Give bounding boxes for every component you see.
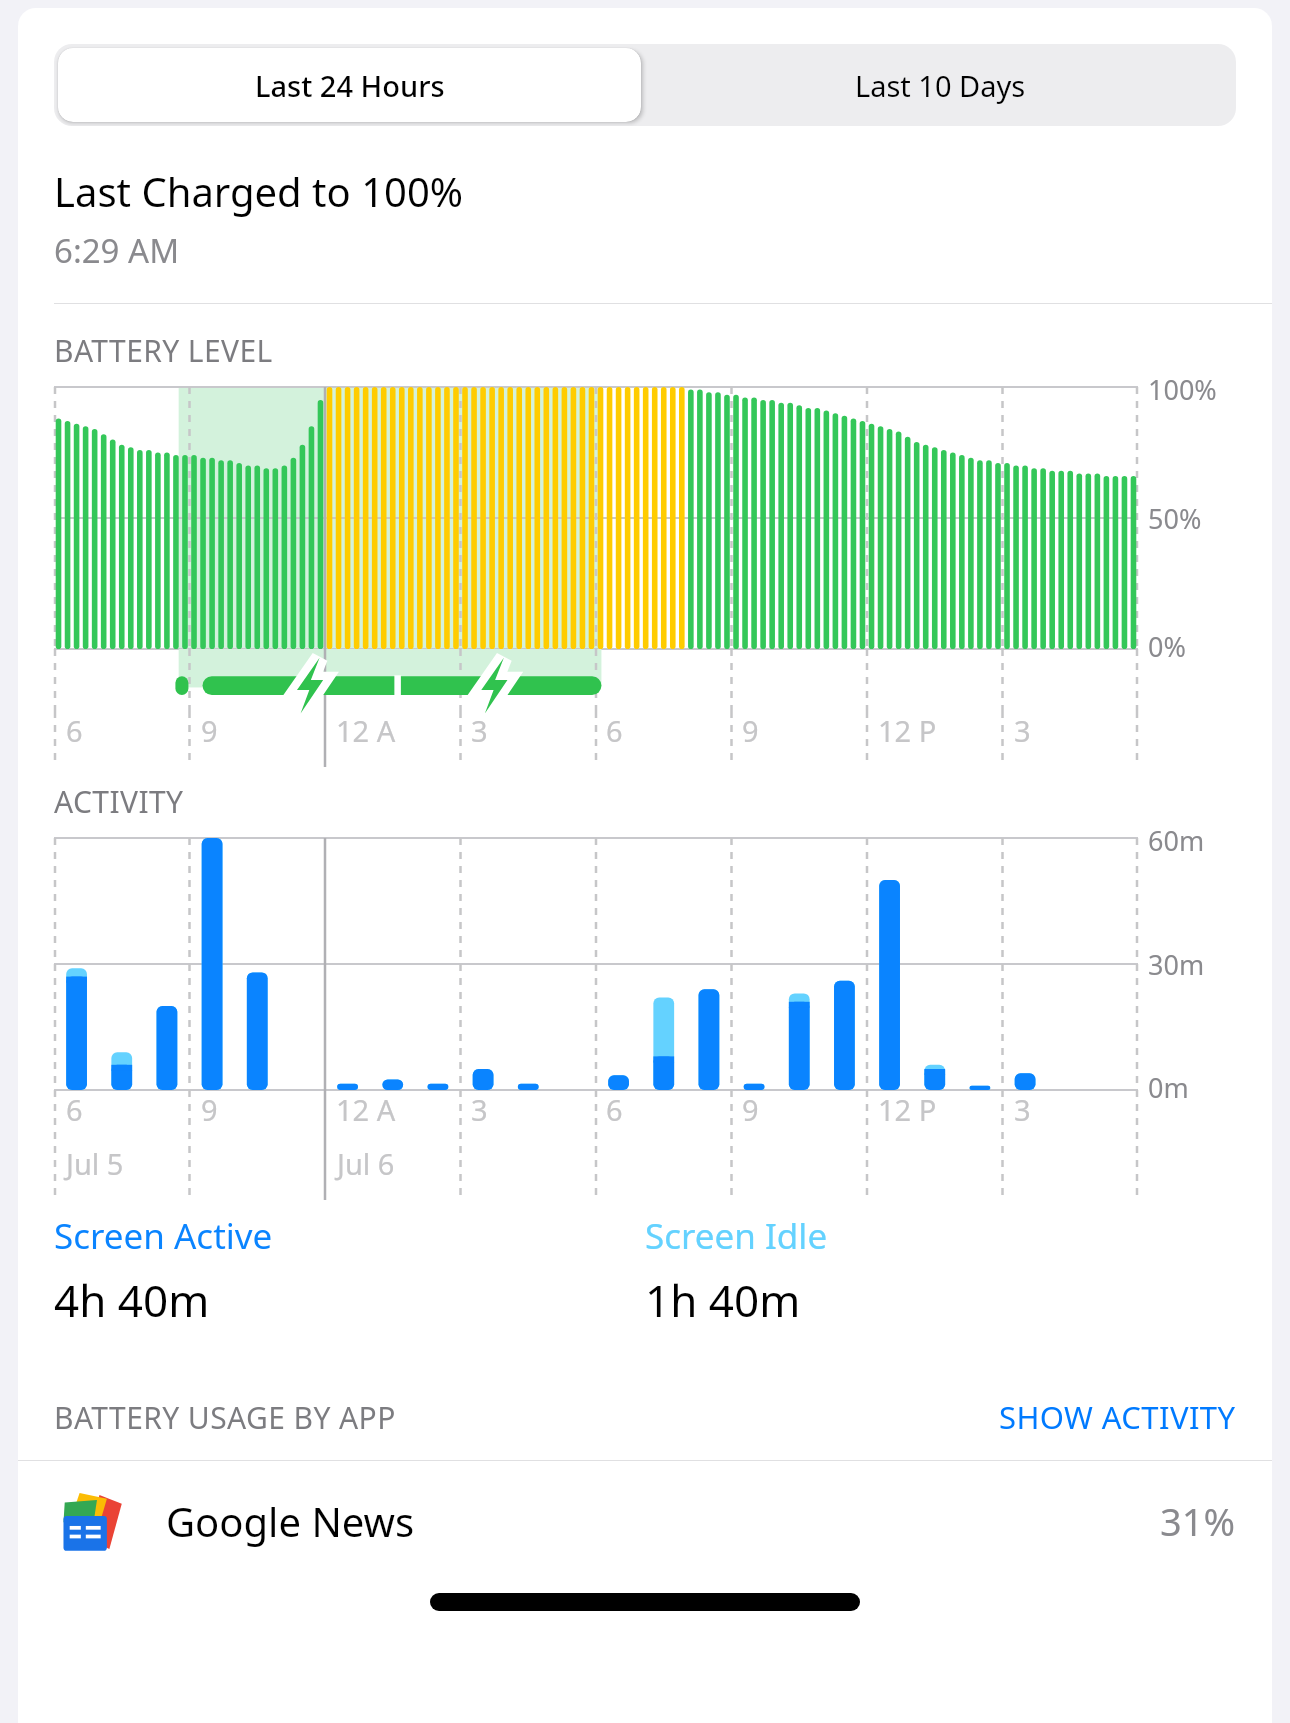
staticText: 3 [471,1090,488,1129]
staticText: 9 [742,1090,759,1129]
button[interactable]: Last 10 Days [645,44,1236,126]
staticText: 12 P [878,711,937,750]
staticText: 3 [471,711,488,750]
staticText: 6 [66,1090,83,1129]
staticText: Screen Idle [645,1212,828,1260]
staticText: 3 [1014,1090,1031,1129]
staticText: Last Charged to 100% [54,164,464,218]
staticText: Jul 5 [66,1144,124,1183]
staticText: SHOW ACTIVITY [999,1396,1236,1438]
staticText: 1h 40m [645,1270,801,1330]
staticText: BATTERY LEVEL [54,330,273,371]
staticText: 6 [66,711,83,750]
staticText: 12 A [336,1090,396,1129]
staticText: 6:29 AM [54,228,180,273]
staticText: 12 A [336,711,396,750]
button[interactable]: Screen Active [54,1212,645,1330]
staticText: 0m [1148,1069,1189,1106]
button[interactable]: Last 24 Hours [58,48,641,122]
staticText: ACTIVITY [54,781,184,822]
staticText: 9 [742,711,759,750]
staticText: 50% [1148,500,1202,537]
button[interactable]: SHOW ACTIVITY [999,1396,1236,1438]
staticText: 0% [1148,628,1186,665]
other: Home indicator [430,1593,860,1611]
staticText: Last 10 Days [855,66,1026,105]
staticText: 60m [1148,822,1205,859]
staticText: 9 [201,1090,218,1129]
staticText: 9 [201,711,218,750]
staticText: 3 [1014,711,1031,750]
staticText: Jul 6 [337,1144,395,1183]
staticText: 30m [1148,946,1205,983]
staticText: 4h 40m [54,1270,210,1330]
staticText: 6 [606,711,623,750]
staticText: Last 24 Hours [255,66,445,105]
button[interactable]: Google News [18,1461,1272,1581]
staticText: 100% [1148,371,1217,408]
staticText: 12 P [878,1090,937,1129]
button[interactable]: Screen Idle [645,1212,1236,1330]
staticText: Screen Active [54,1212,273,1260]
staticText: 31% [1160,1495,1236,1547]
staticText: Google News [166,1494,415,1548]
staticText: BATTERY USAGE BY APP [54,1397,396,1438]
staticText: 6 [606,1090,623,1129]
